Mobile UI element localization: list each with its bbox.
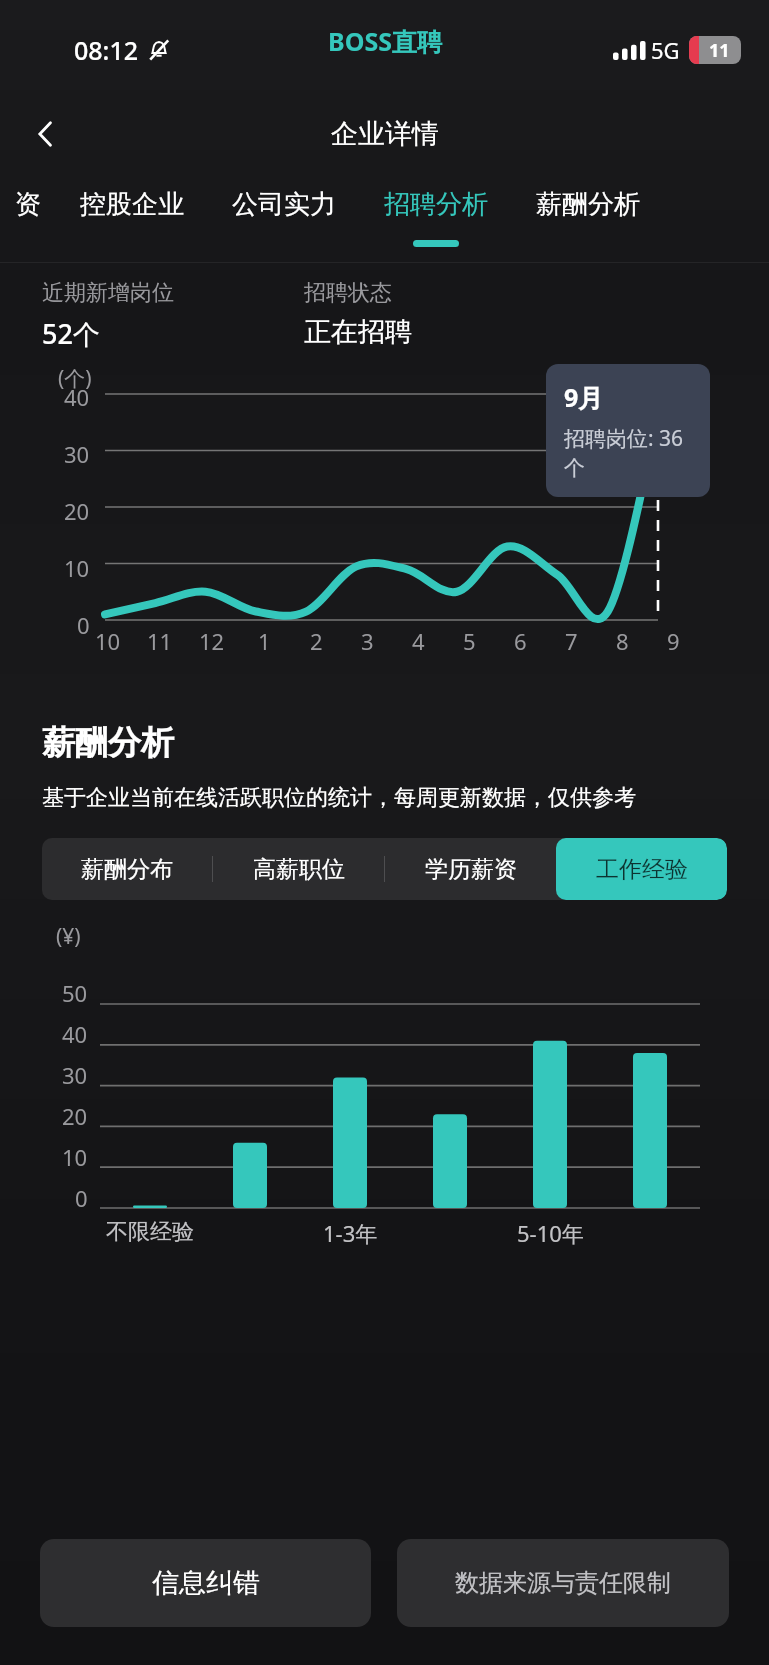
staticText: 40 (62, 1019, 88, 1049)
staticText: 控股企业 (80, 188, 184, 221)
staticText: 5-10年 (517, 1218, 584, 1248)
staticText: 10 (62, 1142, 88, 1172)
staticText: 正在招聘 (304, 315, 412, 349)
staticText: 公司实力 (232, 188, 336, 221)
staticText: 30 (64, 439, 90, 469)
staticText: 1-3年 (323, 1218, 378, 1248)
staticText: 1 (258, 626, 271, 656)
staticText: 0 (75, 1183, 88, 1213)
staticText: 9月 (564, 380, 604, 414)
staticText: 7 (565, 626, 578, 656)
staticText: 学历薪资 (425, 855, 517, 884)
staticText: 5G (651, 35, 680, 65)
staticText: 高薪职位 (253, 855, 345, 884)
staticText: (¥) (56, 922, 81, 951)
button[interactable]: 薪酬分析 (512, 176, 664, 262)
staticText: 招聘分析 (384, 188, 488, 221)
staticText: 40 (64, 382, 90, 412)
staticText: 薪酬分析 (536, 188, 640, 221)
button[interactable]: 薪酬分布 (42, 838, 212, 900)
staticText: 信息纠错 (152, 1566, 260, 1600)
staticText: 50 (62, 978, 88, 1008)
staticText: 资 (15, 188, 41, 221)
button[interactable]: 学历薪资 (385, 838, 556, 900)
staticText: 招聘状态 (304, 279, 392, 307)
staticText: 08:12 (74, 33, 139, 67)
staticText: 2 (310, 626, 323, 656)
button[interactable]: 数据来源与责任限制 (397, 1539, 729, 1627)
staticText: 11 (147, 626, 173, 656)
button[interactable]: 资 (0, 176, 56, 262)
staticText: 9 (667, 626, 680, 656)
button[interactable]: 招聘分析 (360, 176, 512, 262)
staticText: 基于企业当前在线活跃职位的统计，每周更新数据，仅供参考 (42, 784, 636, 812)
staticText: 30 (62, 1060, 88, 1090)
button[interactable]: 工作经验 (556, 838, 727, 900)
staticText: 数据来源与责任限制 (455, 1568, 671, 1598)
staticText: 11 (709, 38, 730, 63)
button[interactable]: 高薪职位 (213, 838, 384, 900)
staticText: 0 (77, 610, 90, 640)
staticText: 8 (616, 626, 629, 656)
staticText: 20 (64, 496, 90, 526)
staticText: 企业详情 (331, 117, 439, 151)
staticText: 招聘岗位: 36个 (564, 424, 692, 481)
button[interactable]: 公司实力 (208, 176, 360, 262)
staticText: (个) (58, 364, 92, 393)
staticText: 薪酬分布 (81, 855, 173, 884)
staticText: 6 (514, 626, 527, 656)
button[interactable]: 控股企业 (56, 176, 208, 262)
staticText: BOSS直聘 (328, 24, 442, 58)
button[interactable]: 信息纠错 (40, 1539, 371, 1627)
staticText: 10 (64, 553, 90, 583)
staticText: 3 (361, 626, 374, 656)
staticText: 12 (199, 626, 225, 656)
staticText: 4 (412, 626, 425, 656)
staticText: 20 (62, 1101, 88, 1131)
staticText: 薪酬分析 (42, 722, 174, 764)
staticText: 52个 (42, 315, 100, 352)
staticText: 工作经验 (596, 855, 688, 884)
staticText: 5 (463, 626, 476, 656)
staticText: 不限经验 (106, 1218, 194, 1246)
staticText: 10 (95, 626, 121, 656)
staticText: 近期新增岗位 (42, 279, 174, 307)
button[interactable]: Back (18, 106, 74, 162)
